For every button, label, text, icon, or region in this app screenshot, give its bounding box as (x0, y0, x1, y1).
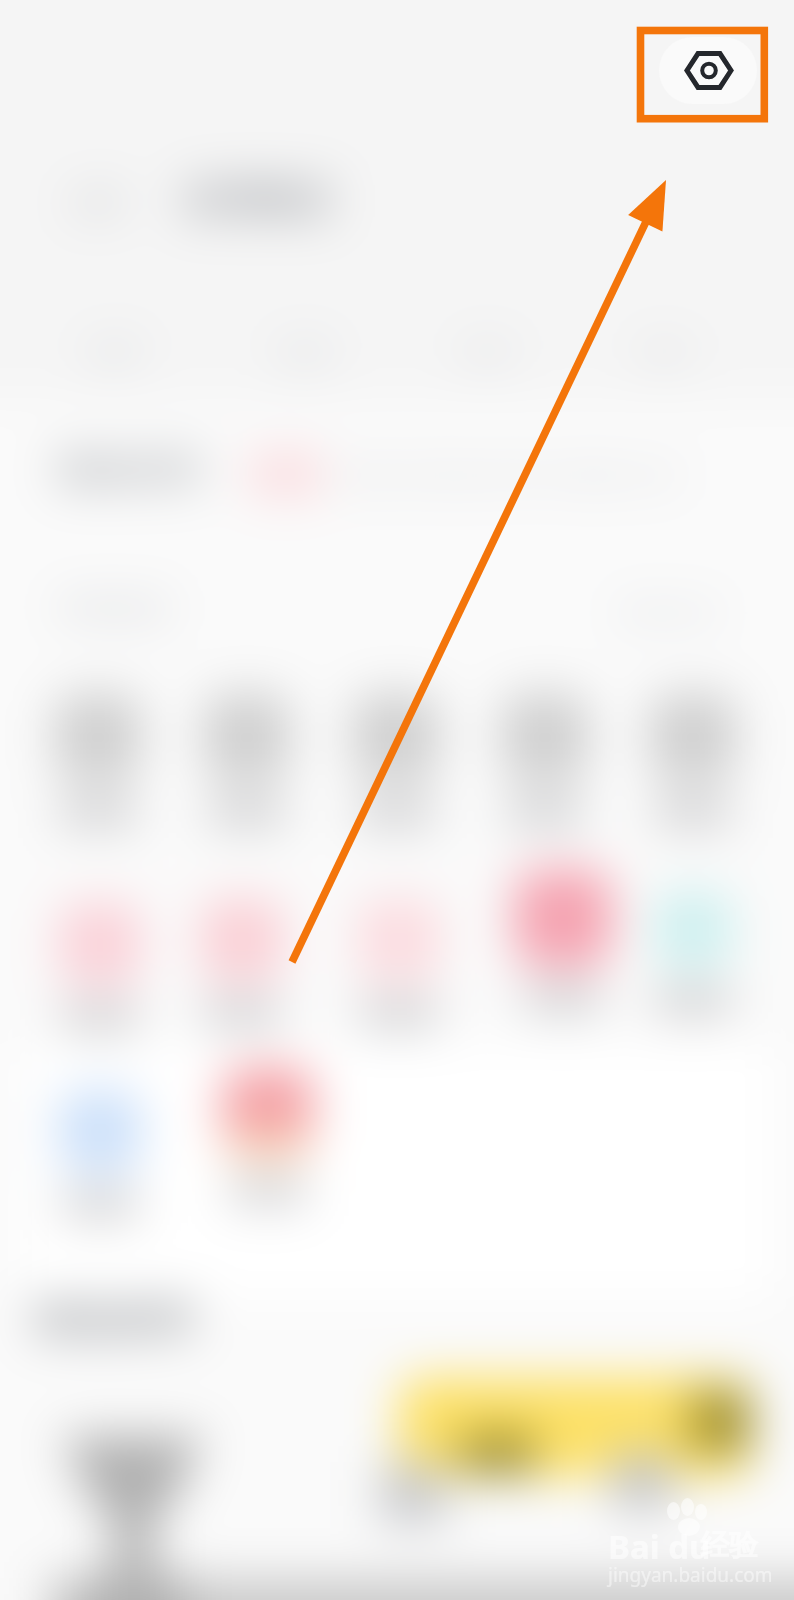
button[interactable]: App icon (203, 693, 291, 781)
button[interactable]: Settings (659, 37, 757, 104)
staticText: 最近安装的应用与更新记录 (345, 458, 681, 493)
button[interactable]: App icon (501, 693, 589, 781)
button[interactable]: App icon (54, 693, 142, 781)
staticText: jingyan.baidu.com (608, 1562, 773, 1588)
button[interactable]: App icon (649, 693, 737, 781)
button[interactable]: App icon (653, 890, 733, 970)
button[interactable]: App icon (357, 898, 441, 982)
staticText: 我的应用 (56, 448, 200, 493)
button[interactable]: App icon (514, 869, 612, 967)
staticText: 经验 (700, 1527, 758, 1564)
button[interactable]: App icon (200, 898, 284, 982)
button[interactable]: App icon (58, 1089, 142, 1173)
button[interactable]: App icon (58, 902, 142, 986)
staticText: 精选推荐 (34, 1294, 194, 1344)
button[interactable]: App icon (222, 1067, 314, 1159)
button[interactable]: App icon (352, 693, 440, 781)
staticText: Bai du (608, 1524, 711, 1569)
staticText: 应用商店 (184, 177, 332, 224)
